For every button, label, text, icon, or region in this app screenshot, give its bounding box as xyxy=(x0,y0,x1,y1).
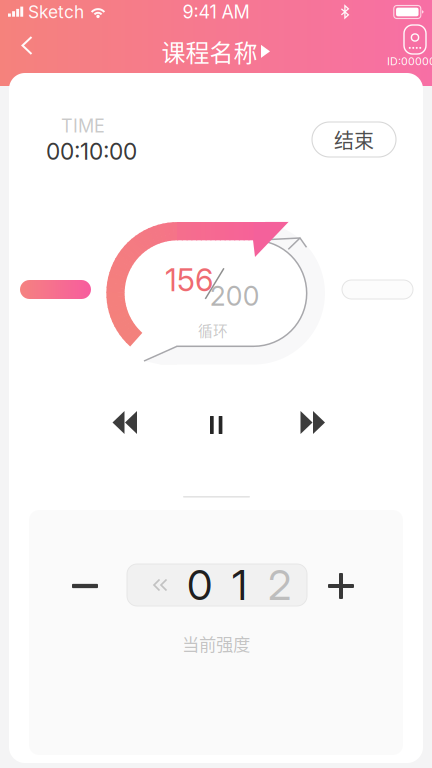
button[interactable]: 结束 xyxy=(312,122,396,157)
button[interactable]: Pause xyxy=(194,400,238,450)
button[interactable]: Back xyxy=(8,24,46,67)
button[interactable]: Fast forward xyxy=(286,397,340,448)
staticText: 2 xyxy=(268,560,291,610)
staticText: 00:10:00 xyxy=(46,138,137,165)
staticText: 当前强度 xyxy=(182,631,250,656)
staticText: 200 xyxy=(210,280,260,312)
button[interactable]: Decrease intensity xyxy=(61,562,109,610)
staticText: TIME xyxy=(61,115,105,137)
staticText: 0 xyxy=(187,560,212,610)
staticText: 156 xyxy=(165,261,213,298)
staticText: Sketch xyxy=(28,1,84,22)
button[interactable]: 课程名称 xyxy=(151,27,280,76)
button[interactable]: Rewind xyxy=(98,397,152,448)
staticText: ID:000000 xyxy=(387,55,432,68)
staticText: 结束 xyxy=(334,125,374,154)
button[interactable]: Device xyxy=(381,22,432,71)
staticText: 课程名称 xyxy=(161,34,257,69)
button[interactable]: Increase intensity xyxy=(317,562,365,610)
staticText: 循环 xyxy=(198,319,228,341)
staticText: 1 xyxy=(232,560,247,610)
staticText: 9:41 AM xyxy=(182,1,249,23)
